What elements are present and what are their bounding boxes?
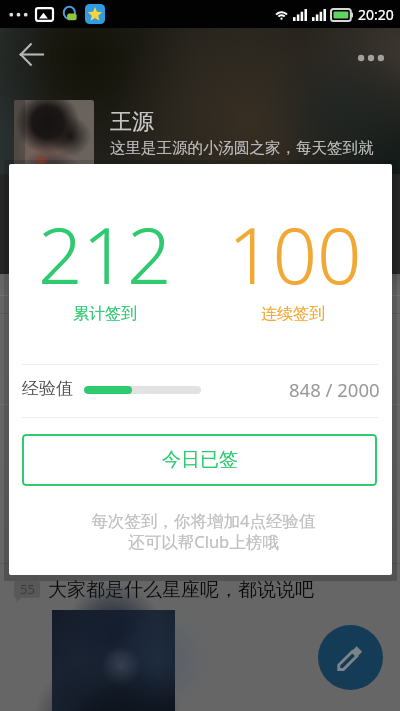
staticText: 连续签到 [261,304,325,324]
staticText: 每次签到，你将增加4点经验值 还可以帮Club上榜哦 [12,509,392,553]
staticText: 100 [228,201,362,307]
staticText: 经验值 [22,378,73,399]
staticText: 今日已签 [162,448,238,472]
staticText: 累计签到 [73,304,137,324]
staticText: 20:20 [358,5,394,24]
staticText: 848 / 2000 [289,377,380,402]
staticText: 212 [38,201,172,307]
staticText: 大家都是什么星座呢，都说说吧 [48,578,314,602]
button[interactable]: Compose [318,625,383,690]
staticText: 王源 [110,108,154,136]
button[interactable]: Back [9,32,54,77]
staticText: 55 [20,580,35,597]
button[interactable]: 今日已签 [22,434,377,486]
staticText: 这里是王源的小汤圆之家，每天签到就 能帮王源上榜，精彩更新都在这里哦 [110,138,374,182]
button[interactable]: More options [348,35,394,81]
